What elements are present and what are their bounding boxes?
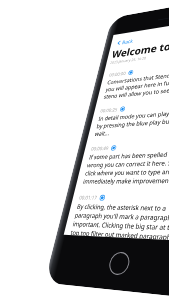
staticText: In detail mode you can playback audio by…: [94, 107, 169, 138]
staticText: If some part has been spelled out wrong …: [82, 149, 169, 185]
staticText: 00:00:49: [91, 145, 110, 151]
staticText: 00:00:00: [109, 70, 127, 77]
other: Play: [128, 70, 134, 75]
staticText: Conversations that Steno records for you…: [103, 67, 169, 100]
staticText: 2023 January 25, 16:20: [110, 55, 147, 65]
button[interactable]: Back: [110, 35, 142, 48]
button[interactable]: 00:00:25: [86, 97, 169, 146]
staticText: 00:01:17: [79, 194, 98, 200]
other: Play: [111, 145, 117, 151]
other: Play: [119, 106, 125, 112]
staticText: 00:00:25: [100, 106, 118, 113]
button[interactable]: Home: [107, 251, 132, 276]
button[interactable]: 00:00:00: [95, 58, 169, 108]
staticText: Welcome to Steno: [111, 34, 169, 60]
staticText: Back: [121, 37, 134, 46]
staticText: By clicking, the asterisk next to a para…: [70, 202, 169, 241]
button[interactable]: 00:01:17: [64, 194, 169, 241]
button[interactable]: 00:00:49: [74, 140, 169, 194]
other: Play: [99, 195, 105, 201]
